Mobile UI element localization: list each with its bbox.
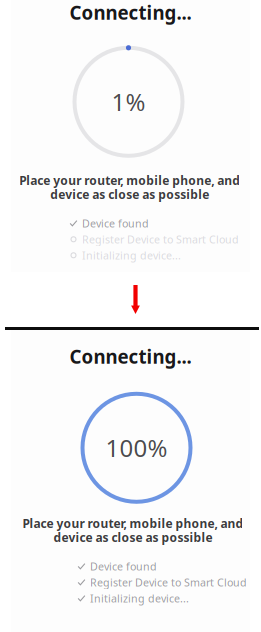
staticText: device as close as possible: [50, 186, 209, 202]
staticText: 1%: [111, 86, 145, 118]
staticText: Place your router, mobile phone, and: [19, 172, 240, 188]
staticText: Place your router, mobile phone, and: [22, 515, 243, 531]
staticText: Register Device to Smart Cloud: [90, 575, 247, 589]
staticText: Device found: [82, 216, 149, 230]
staticText: Device found: [90, 559, 157, 573]
staticText: device as close as possible: [53, 529, 212, 545]
staticText: Initializing device...: [90, 591, 189, 605]
staticText: Connecting...: [69, 0, 191, 25]
staticText: Connecting...: [69, 344, 191, 369]
staticText: Initializing device...: [82, 248, 181, 262]
staticText: 100%: [105, 432, 167, 464]
staticText: Register Device to Smart Cloud: [82, 232, 239, 246]
